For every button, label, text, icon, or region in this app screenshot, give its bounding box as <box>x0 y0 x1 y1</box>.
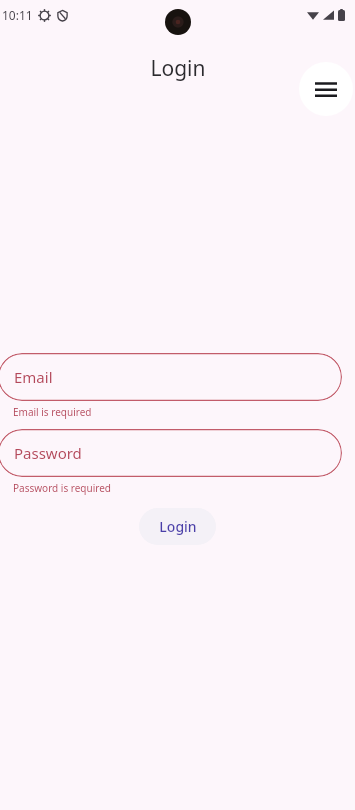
staticText: Email <box>14 367 53 387</box>
button[interactable]: Email <box>0 353 342 401</box>
staticText: Password <box>14 443 82 463</box>
button[interactable]: Login <box>139 508 216 545</box>
staticText: Email is required <box>13 405 92 419</box>
staticText: Login <box>159 517 197 536</box>
staticText: Login <box>150 54 206 83</box>
button[interactable]: Open navigation menu <box>299 62 353 116</box>
staticText: 10:11 <box>2 7 33 23</box>
button[interactable]: Password <box>0 429 342 477</box>
staticText: Password is required <box>13 481 111 495</box>
